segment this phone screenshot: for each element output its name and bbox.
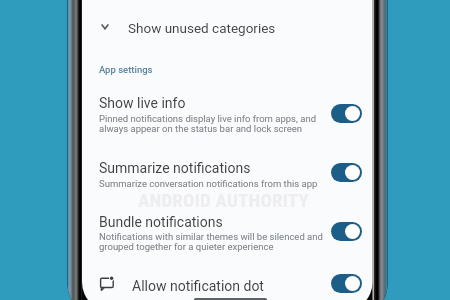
button[interactable]: Toggle on bbox=[331, 274, 362, 293]
staticText: Pinned notifications display live info f… bbox=[99, 113, 317, 134]
staticText: Allow notification dot bbox=[132, 278, 264, 294]
button[interactable]: Toggle on bbox=[331, 222, 362, 241]
staticText: Show unused categories bbox=[128, 20, 276, 36]
button[interactable]: Collapse section bbox=[82, 14, 373, 42]
staticText: ANDROID AUTHORITY bbox=[138, 189, 310, 211]
other: Collapse section bbox=[98, 21, 112, 35]
button[interactable]: Show live info bbox=[82, 95, 373, 136]
staticText: Show live info bbox=[99, 95, 186, 111]
button[interactable]: Summarize notifications bbox=[82, 160, 373, 191]
staticText: Summarize conversation notifications fro… bbox=[99, 178, 318, 189]
button[interactable]: App settings bbox=[99, 64, 153, 75]
staticText: App settings bbox=[99, 64, 153, 75]
button[interactable]: Toggle on bbox=[331, 104, 362, 123]
button[interactable]: Toggle on bbox=[331, 163, 362, 182]
staticText: Notifications with similar themes will b… bbox=[99, 231, 323, 252]
button[interactable]: Bundle notifications bbox=[82, 214, 373, 254]
button[interactable]: Allow notification dot bbox=[82, 271, 373, 300]
staticText: Bundle notifications bbox=[99, 214, 223, 230]
staticText: Summarize notifications bbox=[99, 160, 251, 176]
